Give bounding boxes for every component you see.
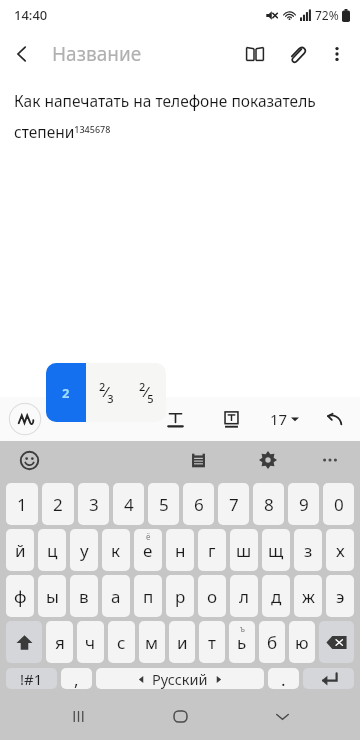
button[interactable]: Text background (214, 402, 248, 436)
button[interactable]: Undo (317, 402, 351, 436)
button[interactable]: Reading mode (234, 33, 276, 75)
button[interactable]: Keyboard settings (252, 444, 284, 476)
button[interactable]: Backspace (319, 621, 354, 663)
button[interactable]: Русский (96, 668, 264, 689)
button[interactable]: . (268, 668, 299, 689)
button[interactable]: т (199, 621, 225, 663)
button[interactable]: н (166, 529, 194, 571)
staticText: з (304, 539, 313, 562)
staticText: п (143, 585, 154, 608)
button[interactable]: ы (38, 575, 66, 617)
button[interactable]: 4 (113, 483, 144, 525)
button[interactable]: Attach (276, 33, 318, 75)
button[interactable]: 2 (42, 483, 74, 525)
button[interactable]: ш (230, 529, 258, 571)
button[interactable]: 9 (288, 483, 319, 525)
button[interactable]: э (326, 575, 354, 617)
button[interactable]: 5 (148, 483, 179, 525)
staticText: ч (85, 631, 96, 654)
button[interactable]: Hide keyboard (258, 692, 306, 740)
button[interactable]: з (294, 529, 322, 571)
staticText: 72% (315, 7, 339, 23)
staticText: 2 (53, 493, 63, 516)
button[interactable]: м (139, 621, 165, 663)
button[interactable]: Highlight (52, 402, 86, 436)
button[interactable]: More (314, 444, 346, 476)
button[interactable]: и (169, 621, 195, 663)
staticText: !#1 (20, 669, 43, 689)
staticText: и (177, 631, 188, 654)
button[interactable]: к (102, 529, 130, 571)
button[interactable]: л (230, 575, 258, 617)
staticText: ф (14, 585, 27, 608)
button[interactable]: 2⁄3 (86, 363, 126, 422)
button[interactable]: Strikethrough (100, 402, 134, 436)
button[interactable]: Text color (158, 402, 192, 436)
staticText: 0 (334, 493, 344, 516)
button[interactable]: б (259, 621, 285, 663)
staticText: 6 (194, 493, 204, 516)
staticText: в (79, 585, 89, 608)
staticText: б (267, 631, 278, 654)
staticText: ш (236, 539, 252, 562)
button[interactable]: ё (134, 529, 162, 571)
button[interactable]: щ (262, 529, 290, 571)
button[interactable]: ъ (229, 621, 255, 663)
button[interactable]: п (134, 575, 162, 617)
staticText: н (175, 539, 186, 562)
button[interactable]: 2 (46, 363, 86, 422)
staticText: к (111, 539, 121, 562)
button[interactable]: д (262, 575, 290, 617)
staticText: ы (46, 585, 59, 608)
button[interactable]: 1 (6, 483, 38, 525)
button[interactable]: о (198, 575, 226, 617)
button[interactable]: ж (294, 575, 322, 617)
staticText: я (55, 631, 65, 654)
staticText: й (15, 539, 26, 562)
staticText: а (111, 585, 121, 608)
staticText: Название (52, 41, 142, 67)
staticText: ж (302, 585, 315, 608)
button[interactable]: ц (38, 529, 66, 571)
button[interactable]: More options (318, 35, 356, 73)
staticText: г (208, 539, 216, 562)
button[interactable]: 8 (253, 483, 284, 525)
button[interactable]: 6 (183, 483, 214, 525)
button[interactable]: Back (0, 32, 44, 76)
button[interactable]: Shift (6, 621, 42, 663)
button[interactable]: ч (77, 621, 104, 663)
button[interactable]: Recents (54, 692, 102, 740)
button[interactable]: 17 (266, 409, 303, 429)
button[interactable]: Emoji (14, 445, 44, 475)
button[interactable]: 7 (218, 483, 249, 525)
button[interactable]: я (46, 621, 73, 663)
staticText: ц (47, 539, 58, 562)
button[interactable]: г (198, 529, 226, 571)
staticText: у (80, 539, 89, 562)
button[interactable]: , (61, 668, 92, 689)
button[interactable]: ю (289, 621, 315, 663)
staticText: ю (295, 631, 309, 654)
button[interactable]: а (102, 575, 130, 617)
staticText: р (175, 585, 186, 608)
button[interactable]: 3 (78, 483, 109, 525)
button[interactable]: Clipboard (182, 444, 214, 476)
button[interactable]: й (6, 529, 34, 571)
staticText: т (208, 631, 216, 654)
staticText: 2⁄5 (139, 379, 154, 406)
button[interactable]: 2⁄5 (126, 363, 166, 422)
button[interactable]: Enter (303, 668, 354, 689)
button[interactable]: у (70, 529, 98, 571)
staticText: ь (237, 631, 247, 654)
button[interactable]: х (326, 529, 354, 571)
staticText: ъ (240, 623, 245, 634)
button[interactable]: ф (6, 575, 34, 617)
button[interactable]: Home (156, 692, 204, 740)
button[interactable]: р (166, 575, 194, 617)
button[interactable]: 0 (323, 483, 354, 525)
button[interactable]: с (108, 621, 135, 663)
button[interactable]: Handwriting (8, 402, 42, 436)
button[interactable]: !#1 (6, 668, 57, 689)
staticText: э (336, 585, 345, 608)
button[interactable]: в (70, 575, 98, 617)
